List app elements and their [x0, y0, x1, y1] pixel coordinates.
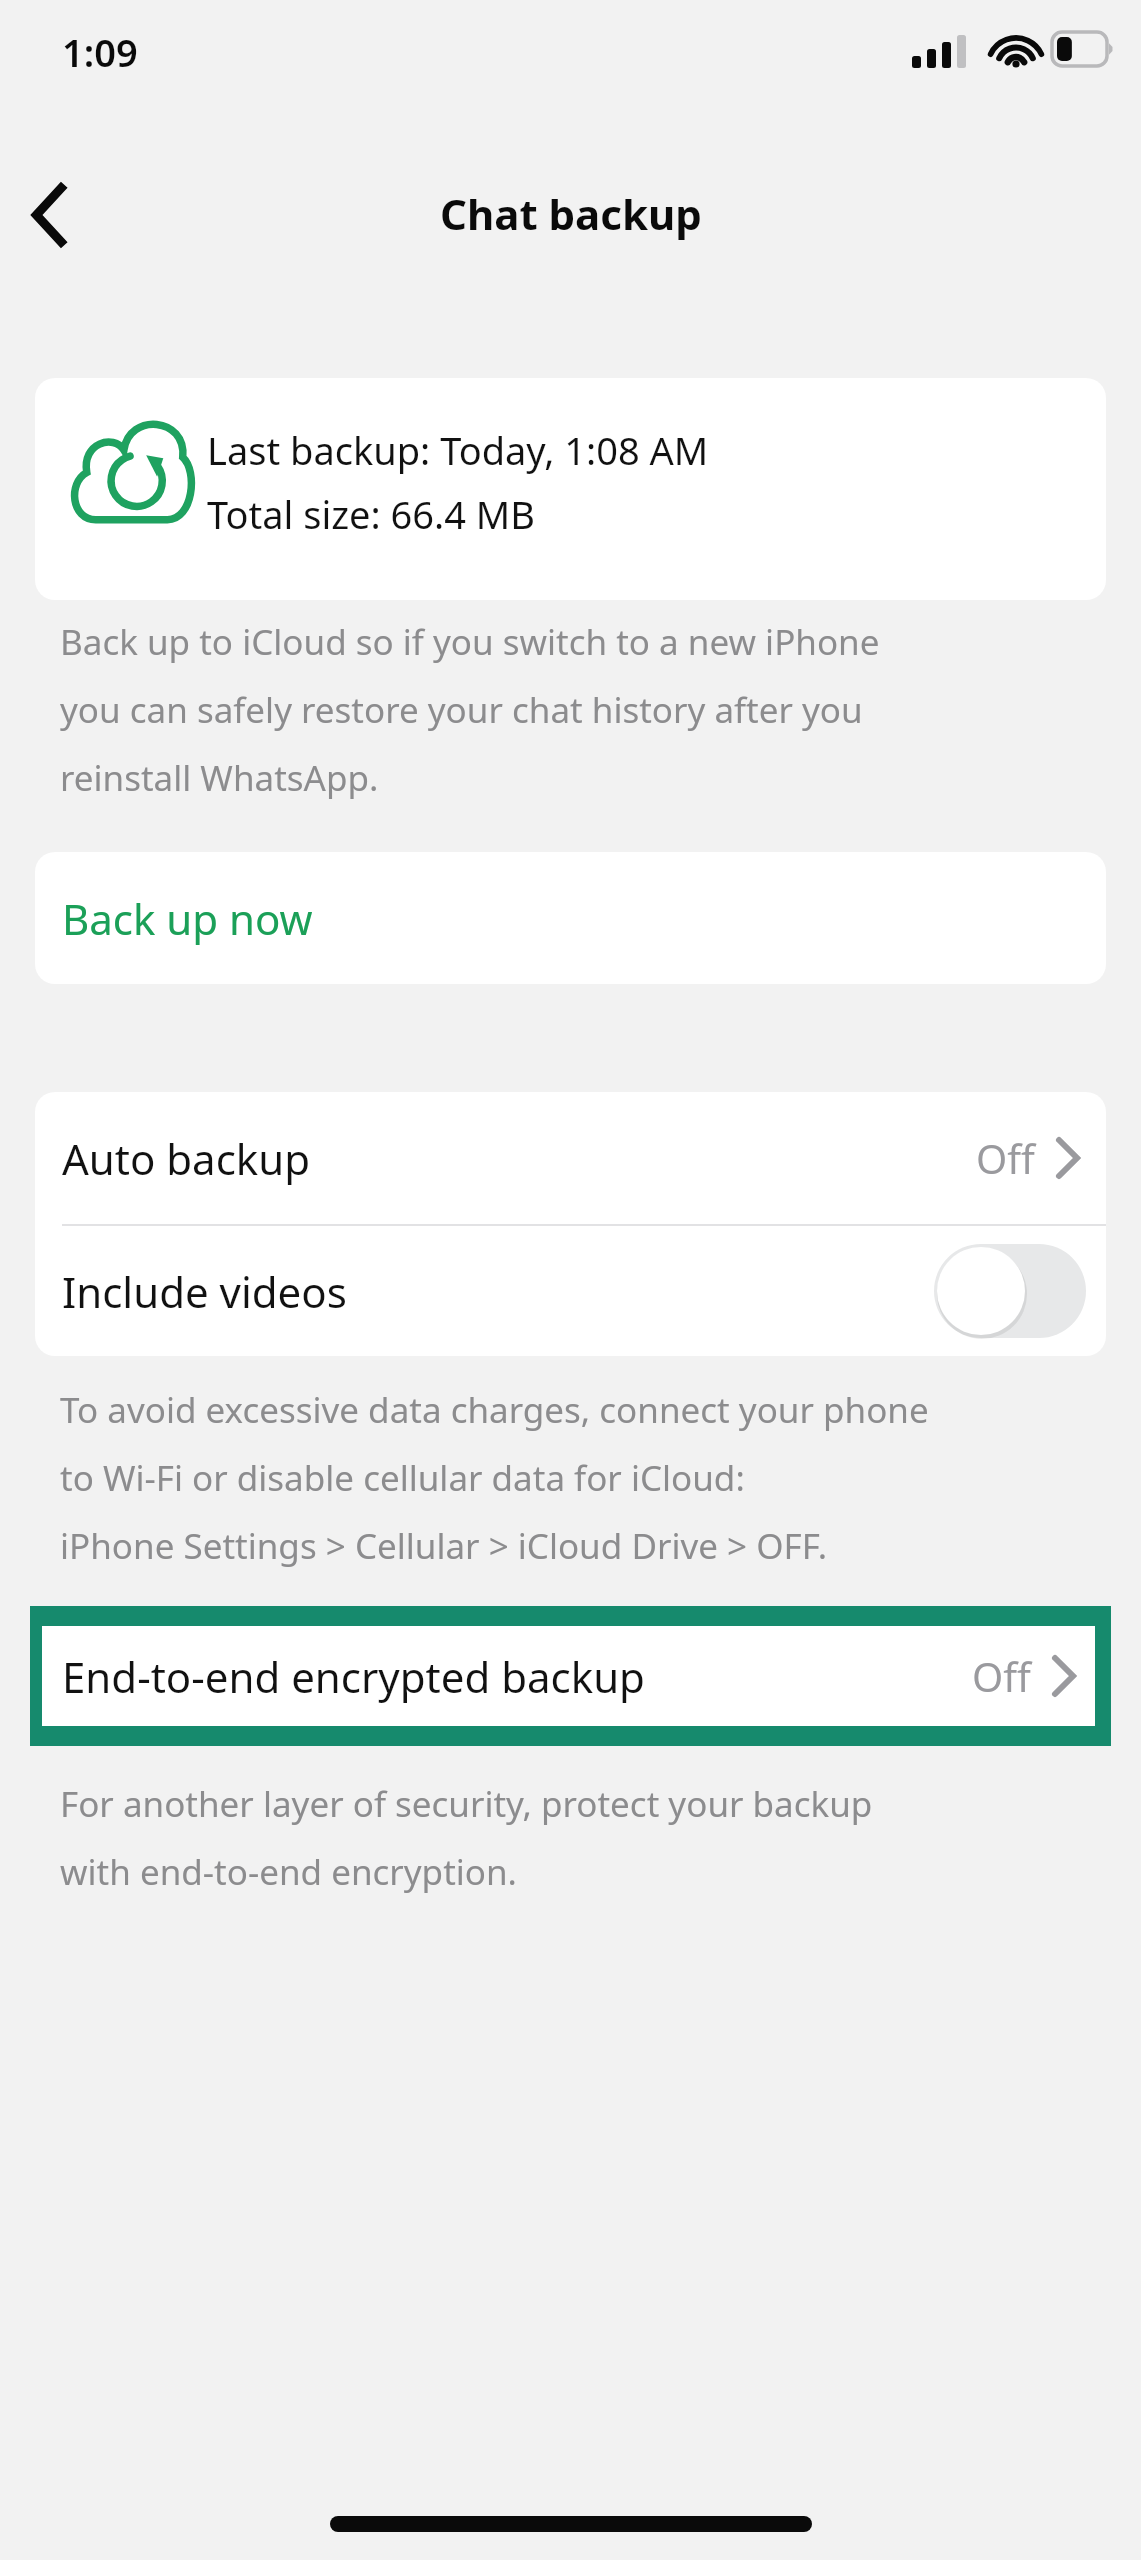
- staticText: End-to-end encrypted backup: [62, 1648, 645, 1705]
- staticText: Back up to iCloud so if you switch to a …: [60, 618, 880, 666]
- button[interactable]: Last backup: Today, 1:08 AM: [35, 378, 1106, 600]
- button[interactable]: Back: [0, 160, 100, 270]
- staticText: Total size: 66.4 MB: [207, 488, 535, 540]
- button[interactable]: Auto backup: [35, 1092, 1106, 1224]
- staticText: you can safely restore your chat history…: [60, 686, 863, 734]
- staticText: Off: [976, 1131, 1035, 1185]
- staticText: iPhone Settings > Cellular > iCloud Driv…: [60, 1522, 828, 1570]
- button[interactable]: Include videos: [35, 1226, 1106, 1356]
- button[interactable]: Include videos toggle: [934, 1244, 1086, 1338]
- staticText: Chat backup: [440, 185, 702, 242]
- button[interactable]: End-to-end encrypted backup: [30, 1606, 1111, 1746]
- staticText: with end-to-end encryption.: [60, 1848, 517, 1896]
- staticText: Back up now: [62, 890, 313, 947]
- staticText: Off: [972, 1649, 1031, 1703]
- staticText: Auto backup: [62, 1130, 311, 1187]
- staticText: reinstall WhatsApp.: [60, 754, 379, 802]
- staticText: to Wi-Fi or disable cellular data for iC…: [60, 1454, 745, 1502]
- staticText: 1:09: [62, 26, 138, 76]
- staticText: Include videos: [62, 1263, 347, 1320]
- staticText: Last backup: Today, 1:08 AM: [207, 424, 709, 476]
- button[interactable]: Back up now: [35, 852, 1106, 984]
- staticText: For another layer of security, protect y…: [60, 1780, 873, 1828]
- staticText: To avoid excessive data charges, connect…: [60, 1386, 929, 1434]
